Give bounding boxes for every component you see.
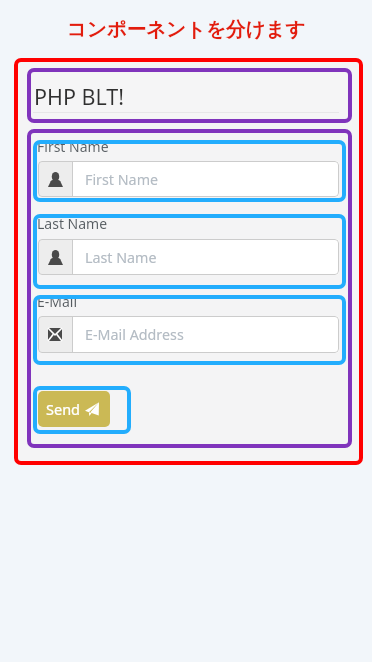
button[interactable]: Person [38,161,339,197]
staticText: Last Name [85,248,157,267]
button[interactable]: E-Mail [38,316,339,353]
button[interactable]: Send [38,391,110,427]
staticText: コンポーネントを分けます [0,17,372,42]
staticText: First Name [85,170,159,189]
staticText: Last Name [37,214,108,233]
other: E-Mail [48,328,62,341]
staticText: PHP BLT! [34,82,125,111]
staticText: E-Mail Address [85,325,184,344]
other: Person [48,250,63,265]
button[interactable]: Person [38,239,339,275]
staticText: First Name [37,137,109,156]
staticText: E-Mail [37,292,78,311]
other: Person [48,172,63,187]
staticText: Send [46,399,81,419]
